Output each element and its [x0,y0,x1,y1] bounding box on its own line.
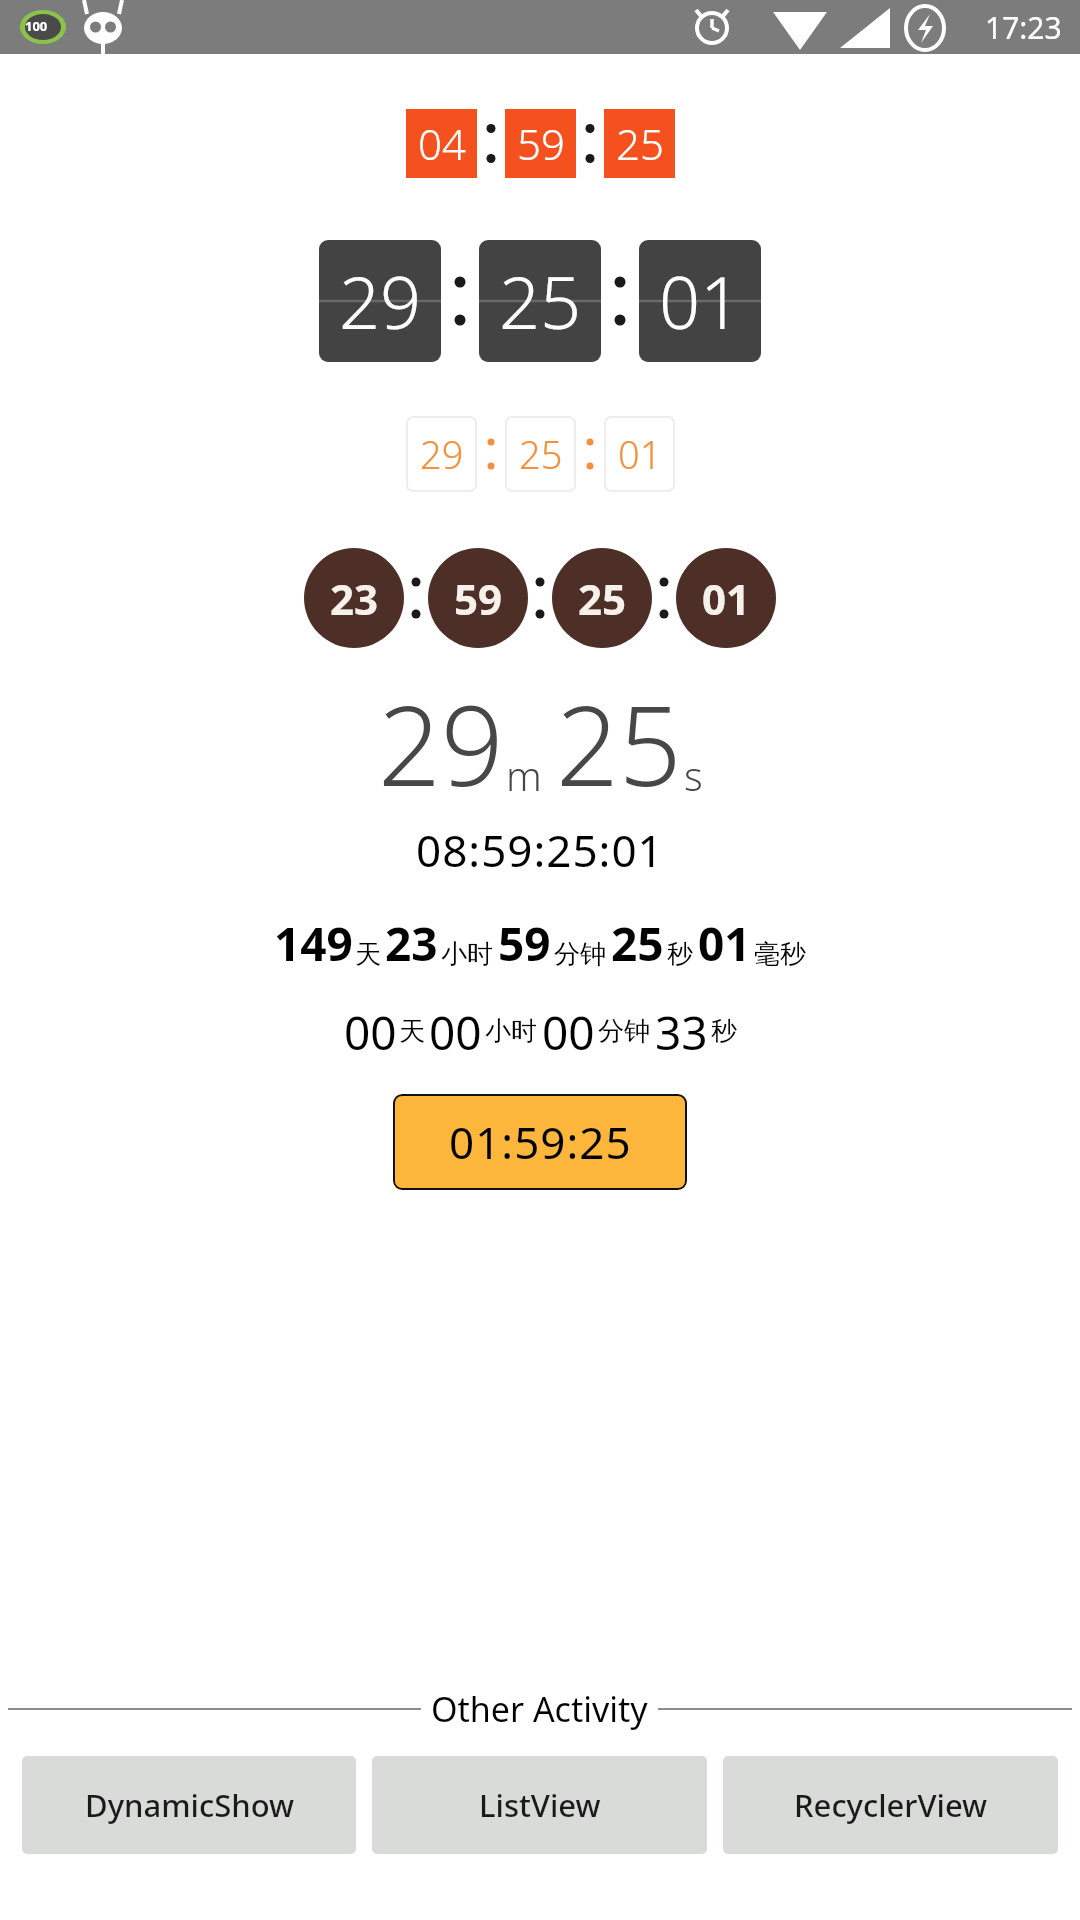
staticText: 小时 [441,938,493,971]
staticText: RecyclerView [794,1784,988,1826]
staticText: 01 [698,912,751,975]
staticText: 23 [330,570,379,627]
staticText: ListView [479,1784,601,1826]
staticText: 25 [611,912,664,975]
staticText: 分钟 [554,938,606,971]
staticText: 01:59:25 [449,1112,632,1172]
staticText: 59 [454,570,503,627]
staticText: Other Activity [431,1686,648,1732]
staticText: m [506,748,542,802]
staticText: 25 [499,252,582,350]
staticText: 100 [25,17,48,35]
staticText: 00 [344,1001,397,1064]
staticText: 08:59:25:01 [416,820,664,880]
staticText: 00 [542,1001,595,1064]
staticText: 29 [420,428,464,480]
staticText: 25 [616,115,664,172]
staticText: s [684,748,703,802]
staticText: 00 [429,1001,482,1064]
staticText: 天 [399,1015,425,1048]
staticText: 04 [418,115,466,172]
staticText: 秒 [711,1015,737,1048]
staticText: 149 [274,912,353,975]
button[interactable]: ListView [372,1756,707,1854]
staticText: 25 [556,668,682,818]
staticText: 分钟 [598,1015,650,1048]
staticText: 23 [385,912,438,975]
staticText: DynamicShow [85,1784,294,1826]
staticText: 秒 [667,938,693,971]
staticText: 29 [378,668,504,818]
staticText: 59 [498,912,551,975]
staticText: 33 [655,1001,708,1064]
staticText: 01 [659,252,742,350]
staticText: 01 [618,428,662,480]
staticText: 17:23 [985,7,1062,48]
staticText: 25 [519,428,563,480]
staticText: 29 [339,252,422,350]
button[interactable]: DynamicShow [22,1756,356,1854]
staticText: 59 [517,115,565,172]
staticText: 天 [355,938,381,971]
staticText: 01 [702,570,751,627]
button[interactable]: 01:59:25 [393,1094,687,1190]
button[interactable]: RecyclerView [723,1756,1058,1854]
staticText: 25 [578,570,627,627]
staticText: 毫秒 [754,938,806,971]
staticText: 小时 [485,1015,537,1048]
